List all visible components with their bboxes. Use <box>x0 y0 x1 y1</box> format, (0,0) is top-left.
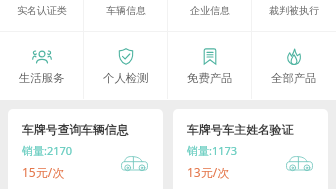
button[interactable]: 实名认证类 <box>0 0 84 31</box>
staticText: 销量:1173 <box>187 143 238 158</box>
button[interactable]: 裁判被执行 <box>252 0 336 31</box>
button[interactable]: 免费产品 <box>168 32 252 100</box>
button[interactable]: 企业信息 <box>168 0 252 31</box>
staticText: 13元/次 <box>187 164 230 180</box>
button[interactable]: 全部产品 <box>252 32 336 100</box>
staticText: 销量:2170 <box>22 143 73 158</box>
staticText: 实名认证类 <box>17 4 67 17</box>
staticText: 车辆信息 <box>106 4 146 17</box>
staticText: 裁判被执行 <box>269 4 319 17</box>
staticText: 车牌号查询车辆信息 <box>22 123 129 138</box>
staticText: 生活服务 <box>19 71 65 85</box>
staticText: 全部产品 <box>271 71 317 85</box>
button[interactable]: 车牌号车主姓名验证 <box>173 109 328 189</box>
staticText: 企业信息 <box>190 4 230 17</box>
staticText: 免费产品 <box>187 71 233 85</box>
staticText: 个人检测 <box>103 71 149 85</box>
button[interactable]: 生活服务 <box>0 32 84 100</box>
staticText: 15元/次 <box>22 164 65 180</box>
button[interactable]: 车辆信息 <box>84 0 168 31</box>
button[interactable]: 个人检测 <box>84 32 168 100</box>
button[interactable]: 车牌号查询车辆信息 <box>8 109 163 189</box>
staticText: 车牌号车主姓名验证 <box>187 123 294 138</box>
